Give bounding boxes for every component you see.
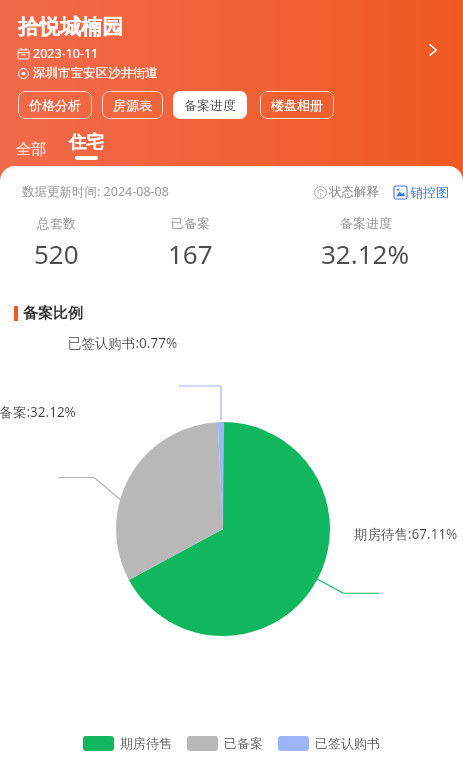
staticText: 2023-10-11 <box>33 45 99 62</box>
staticText: 楼盘相册 <box>271 97 323 113</box>
button[interactable]: 已签认购书 <box>278 735 380 751</box>
staticText: 总套数 <box>37 215 76 231</box>
staticText: 数据更新时间: 2024-08-08 <box>22 183 169 200</box>
staticText: 备案进度 <box>340 215 392 231</box>
staticText: 期房待售:67.11% <box>354 525 458 543</box>
staticText: 已备案 <box>224 735 263 751</box>
staticText: 167 <box>168 236 213 271</box>
staticText: 期房待售 <box>120 735 172 751</box>
staticText: 备案比例 <box>23 304 83 323</box>
button[interactable]: 销控图 <box>394 184 449 200</box>
button[interactable]: 价格分析 <box>18 91 92 119</box>
button[interactable]: 房源表 <box>102 91 163 119</box>
button[interactable]: 状态解释 <box>314 184 379 200</box>
staticText: 已签认购书:0.77% <box>68 334 178 352</box>
staticText: 已备案 <box>171 215 210 231</box>
staticText: 已备案:32.12% <box>0 403 76 421</box>
staticText: 深圳市宝安区沙井街道 <box>33 65 158 81</box>
button[interactable]: 全部 <box>13 139 49 160</box>
staticText: 拾悦城楠园 <box>18 14 123 40</box>
button[interactable]: 备案进度 <box>173 91 247 119</box>
staticText: 销控图 <box>410 184 449 200</box>
staticText: 住宅 <box>69 131 104 153</box>
button[interactable]: 期房待售 <box>83 735 172 751</box>
button[interactable]: 楼盘相册 <box>260 91 334 119</box>
staticText: 价格分析 <box>29 97 81 113</box>
staticText: 备案进度 <box>184 97 236 113</box>
staticText: 全部 <box>16 140 46 159</box>
button[interactable]: 住宅 <box>66 131 107 160</box>
staticText: 状态解释 <box>329 184 379 200</box>
button[interactable]: 已备案 <box>187 735 263 751</box>
button[interactable]: 项目详情 <box>415 32 451 68</box>
staticText: 已签认购书 <box>315 735 380 751</box>
staticText: 房源表 <box>113 97 152 113</box>
staticText: 520 <box>34 236 79 271</box>
staticText: 32.12% <box>321 236 410 271</box>
